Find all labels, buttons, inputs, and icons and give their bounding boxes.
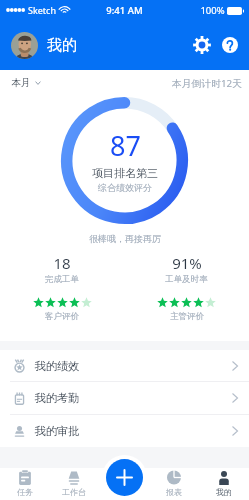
- staticText: 工作台: [62, 487, 86, 497]
- button[interactable]: Avatar: [11, 32, 38, 59]
- staticText: 9:41 AM: [106, 4, 143, 17]
- button[interactable]: 报表: [149, 468, 199, 499]
- staticText: 我的: [216, 487, 232, 497]
- button[interactable]: 任务: [0, 468, 49, 499]
- staticText: 工单及时率: [165, 274, 208, 285]
- staticText: 客户评价: [45, 311, 79, 322]
- staticText: 任务: [17, 487, 33, 497]
- staticText: 项目排名第三: [92, 166, 158, 180]
- staticText: 完成工单: [45, 274, 79, 285]
- button[interactable]: Help: [218, 33, 242, 57]
- staticText: 100%: [200, 4, 225, 17]
- staticText: 87: [110, 127, 141, 164]
- button[interactable]: Settings: [190, 33, 214, 57]
- button[interactable]: 我的: [199, 468, 249, 499]
- staticText: Sketch: [28, 4, 56, 16]
- staticText: 主管评价: [170, 311, 204, 322]
- button[interactable]: 我的审批: [0, 415, 249, 447]
- staticText: 我的绩效: [34, 359, 80, 373]
- staticText: 我的: [47, 36, 77, 55]
- staticText: 我的考勤: [34, 391, 80, 405]
- staticText: 91%: [172, 253, 202, 273]
- staticText: 本月倒计时12天: [172, 77, 242, 90]
- button[interactable]: 我的考勤: [0, 382, 249, 414]
- staticText: 我的审批: [34, 424, 80, 438]
- staticText: 综合绩效评分: [98, 182, 152, 193]
- staticText: 很棒哦，再接再厉: [89, 233, 161, 244]
- button[interactable]: 工作台: [49, 468, 99, 499]
- staticText: 本月: [11, 77, 31, 89]
- staticText: 报表: [166, 487, 182, 497]
- button[interactable]: 我的绩效: [0, 350, 249, 381]
- staticText: 18: [53, 253, 71, 273]
- button[interactable]: 本月: [11, 77, 41, 89]
- button[interactable]: Add: [106, 459, 143, 496]
